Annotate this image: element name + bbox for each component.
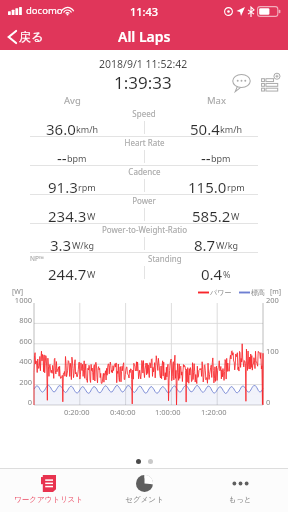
staticText: [m]: [270, 287, 282, 297]
staticText: 200: [6, 377, 32, 387]
staticText: bpm: [67, 152, 87, 164]
staticText: Avg: [64, 94, 81, 107]
button[interactable]: もっと: [192, 468, 288, 512]
staticText: W: [87, 210, 96, 222]
staticText: 1:39:33: [114, 71, 172, 94]
staticText: rpm: [227, 181, 245, 193]
staticText: rpm: [78, 181, 96, 193]
staticText: セグメント: [125, 495, 164, 504]
staticText: W/kg: [216, 239, 239, 251]
staticText: W: [87, 268, 96, 280]
button[interactable]: ワークアウトリスト: [0, 468, 96, 512]
staticText: 200: [266, 295, 279, 305]
staticText: %: [223, 268, 231, 280]
staticText: 0.4: [201, 264, 223, 281]
staticText: Standing: [148, 253, 182, 264]
staticText: パワー: [210, 288, 232, 297]
staticText: Heart Rate: [124, 137, 165, 148]
staticText: 8.7: [194, 235, 216, 252]
staticText: 115.0: [188, 177, 227, 194]
staticText: km/h: [76, 123, 99, 135]
button[interactable]: セグメント: [96, 468, 192, 512]
staticText: Max: [207, 94, 226, 107]
staticText: 0: [6, 397, 32, 407]
staticText: 600: [6, 336, 32, 346]
staticText: Power-to-Weight-Ratio: [102, 224, 187, 235]
staticText: --: [201, 148, 211, 165]
staticText: 標高: [251, 288, 265, 297]
staticText: 1000: [6, 295, 32, 305]
staticText: 0:20:00: [64, 407, 90, 417]
staticText: もっと: [228, 495, 252, 504]
staticText: 11:43: [130, 4, 159, 19]
staticText: 戻る: [19, 29, 44, 44]
button[interactable]: Add to list: [261, 73, 280, 92]
staticText: 1:20:00: [201, 407, 227, 417]
staticText: 50.4: [190, 119, 220, 136]
staticText: 244.7: [48, 264, 87, 281]
staticText: 36.0: [46, 119, 76, 136]
staticText: --: [57, 148, 67, 165]
staticText: ワークアウトリスト: [14, 495, 83, 504]
staticText: 91.3: [48, 177, 78, 194]
staticText: km/h: [220, 123, 243, 135]
staticText: 2018/9/1 11:52:42: [99, 57, 188, 71]
staticText: 3.3: [50, 235, 72, 252]
staticText: W: [231, 210, 240, 222]
staticText: 0: [266, 397, 271, 407]
staticText: 100: [266, 346, 279, 356]
staticText: All Laps: [118, 27, 171, 46]
staticText: [W]: [12, 287, 24, 297]
staticText: docomo: [26, 4, 63, 17]
staticText: 585.2: [192, 206, 231, 223]
staticText: W/kg: [72, 239, 95, 251]
staticText: 234.3: [48, 206, 87, 223]
staticText: 1:00:00: [155, 407, 181, 417]
button[interactable]: 戻る: [0, 26, 54, 47]
staticText: NP™: [30, 254, 44, 263]
staticText: bpm: [211, 152, 231, 164]
staticText: 800: [6, 315, 32, 325]
staticText: 0:40:00: [110, 407, 136, 417]
staticText: Speed: [132, 108, 156, 119]
staticText: 400: [6, 356, 32, 366]
staticText: Cadence: [128, 166, 161, 177]
button[interactable]: Comments: [232, 73, 251, 92]
staticText: Power: [132, 195, 156, 206]
